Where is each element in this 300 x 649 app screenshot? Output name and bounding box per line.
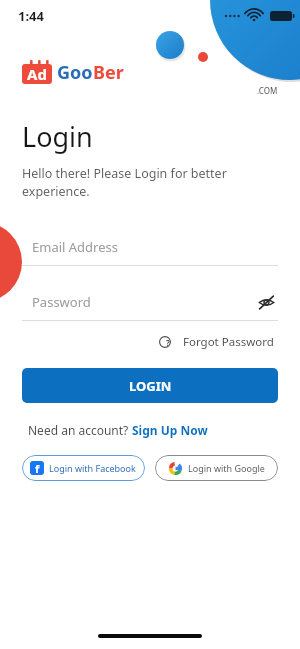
staticText: Login bbox=[22, 118, 93, 155]
staticText: Sign Up Now bbox=[132, 422, 208, 438]
staticText: Email Address bbox=[32, 238, 118, 256]
button[interactable]: Email Address bbox=[22, 238, 278, 266]
staticText: 1:44 bbox=[18, 7, 44, 25]
button[interactable]: Sign Up Now bbox=[132, 422, 208, 438]
staticText: f bbox=[35, 461, 40, 475]
staticText: Need an account? bbox=[28, 422, 132, 438]
button[interactable]: f bbox=[22, 455, 145, 481]
staticText: Forgot Password bbox=[183, 334, 274, 350]
staticText: Ber bbox=[93, 60, 124, 85]
staticText: Goo bbox=[57, 60, 93, 85]
staticText: Hello there! Please Login for better exp… bbox=[22, 165, 227, 200]
staticText: Password bbox=[32, 293, 91, 311]
staticText: LOGIN bbox=[129, 377, 172, 395]
button[interactable]: LOGIN bbox=[22, 368, 278, 403]
staticText: .COM bbox=[257, 85, 278, 96]
button[interactable]: Password bbox=[22, 290, 278, 321]
staticText: Login with Facebook bbox=[49, 462, 136, 474]
button[interactable]: ? bbox=[155, 330, 278, 354]
button[interactable]: Login with Google bbox=[155, 455, 278, 481]
button[interactable]: Show password bbox=[254, 290, 278, 314]
staticText: Ad bbox=[27, 64, 47, 84]
staticText: Login with Google bbox=[188, 462, 265, 474]
staticText: ? bbox=[166, 337, 170, 348]
